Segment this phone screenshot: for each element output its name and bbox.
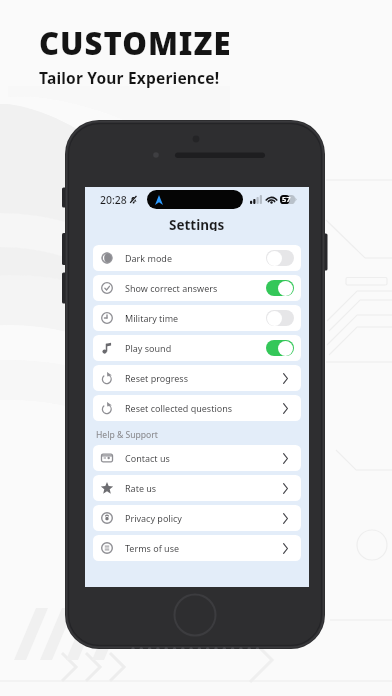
staticText: Contact us — [125, 452, 170, 464]
staticText: CUSTOMIZE — [39, 22, 232, 64]
staticText: Military time — [125, 312, 179, 324]
button[interactable]: Dark mode — [93, 245, 301, 271]
staticText: Dark mode — [125, 252, 172, 264]
button[interactable]: Privacy policy — [93, 505, 301, 531]
staticText: 57 — [282, 194, 291, 204]
staticText: Play sound — [125, 342, 172, 354]
staticText: Tailor Your Experience! — [39, 67, 220, 88]
button[interactable]: Terms of use — [93, 535, 301, 561]
button[interactable]: Reset progress — [93, 365, 301, 391]
button[interactable]: Play sound — [93, 335, 301, 361]
button[interactable]: Military time — [93, 305, 301, 331]
staticText: Show correct answers — [125, 282, 218, 294]
staticText: Terms of use — [125, 542, 180, 554]
button[interactable]: Show correct answers — [93, 275, 301, 301]
staticText: Reset collected questions — [125, 402, 233, 414]
button[interactable]: Contact us — [93, 445, 301, 471]
staticText: Help & Support — [96, 429, 158, 441]
button[interactable]: Reset collected questions — [93, 395, 301, 421]
staticText: Rate us — [125, 482, 157, 494]
staticText: Privacy policy — [125, 512, 182, 524]
staticText: 20:28 — [100, 193, 127, 207]
staticText: Reset progress — [125, 372, 188, 384]
button[interactable]: Rate us — [93, 475, 301, 501]
staticText: Settings — [169, 216, 225, 231]
